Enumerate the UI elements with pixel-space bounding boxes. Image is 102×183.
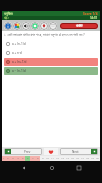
staticText: 14	[66, 157, 69, 160]
staticText: a + n·d	[12, 51, 22, 55]
staticText: 16	[76, 157, 79, 160]
button[interactable]: 20	[95, 156, 100, 161]
button[interactable]: 9	[40, 156, 45, 161]
button[interactable]: 6	[25, 156, 30, 161]
staticText: 20	[96, 157, 99, 160]
button[interactable]: 14	[65, 156, 70, 161]
staticText: 10	[46, 157, 49, 160]
button[interactable]: Reset	[31, 22, 39, 30]
staticText: 6	[27, 157, 29, 160]
button[interactable]: Next	[60, 148, 98, 155]
staticText: প্রশ্ন ১	[4, 16, 9, 20]
button[interactable]: 13	[60, 156, 65, 161]
button[interactable]: 18	[85, 156, 90, 161]
button[interactable]: Recents	[74, 163, 83, 172]
staticText: 15	[71, 157, 74, 160]
staticText: a + (n-1)d	[12, 42, 26, 46]
staticText: 13	[61, 157, 64, 160]
staticText: 1	[3, 157, 5, 160]
button[interactable]: 19	[90, 156, 95, 161]
staticText: 17	[81, 157, 84, 160]
button[interactable]: a + (n+1)d	[4, 58, 98, 66]
button[interactable]: Prev	[4, 148, 42, 155]
staticText: Score 1/4	[83, 12, 98, 16]
button[interactable]: সাবমিট	[60, 23, 98, 29]
staticText: অনুশীলন	[4, 12, 13, 15]
button[interactable]: 8	[35, 156, 40, 161]
staticText: a + (n+1)d	[12, 60, 27, 64]
staticText: 5	[22, 157, 24, 160]
button[interactable]: 16	[75, 156, 80, 161]
button[interactable]: Favourite	[44, 148, 58, 155]
button[interactable]: 11	[50, 156, 55, 161]
staticText: 18	[86, 157, 89, 160]
button[interactable]: 10	[45, 156, 50, 161]
button[interactable]: 2	[6, 156, 10, 161]
button[interactable]: Back	[19, 163, 28, 172]
staticText: Next	[72, 150, 79, 154]
staticText: 12	[56, 157, 59, 160]
staticText: a − (n-1)d	[12, 69, 26, 73]
button[interactable]: Bookmark	[40, 22, 48, 30]
button[interactable]: 12	[55, 156, 60, 161]
staticText: 14:51	[90, 16, 98, 20]
button[interactable]: 3	[10, 156, 15, 161]
staticText: Prev	[24, 150, 31, 154]
button[interactable]: 15	[70, 156, 75, 161]
staticText: 11	[51, 157, 54, 160]
staticText: 9	[42, 157, 44, 160]
button[interactable]: 5	[20, 156, 25, 161]
staticText: 7	[32, 157, 34, 160]
staticText: 3	[12, 157, 14, 160]
button[interactable]: 1	[2, 156, 6, 161]
button[interactable]: Info	[4, 22, 12, 30]
button[interactable]: Note	[49, 22, 57, 30]
staticText: 2	[7, 157, 9, 160]
button[interactable]: 7	[30, 156, 35, 161]
staticText: সাবমিট	[76, 25, 83, 28]
button[interactable]: Home	[47, 163, 56, 172]
staticText: 4	[17, 157, 19, 160]
button[interactable]: a − (n-1)d	[4, 67, 98, 75]
button[interactable]: Colors	[13, 22, 21, 30]
staticText: 8	[37, 157, 39, 160]
staticText: 19	[91, 157, 94, 160]
staticText: ১. একটি সমান্তরাল প্রগতির প্রথম পদ a, সা…	[4, 33, 85, 37]
button[interactable]: Sound	[22, 22, 30, 30]
button[interactable]: 4	[15, 156, 20, 161]
button[interactable]: 17	[80, 156, 85, 161]
button[interactable]: a + (n-1)d	[4, 40, 98, 48]
button[interactable]: a + n·d	[4, 49, 98, 57]
